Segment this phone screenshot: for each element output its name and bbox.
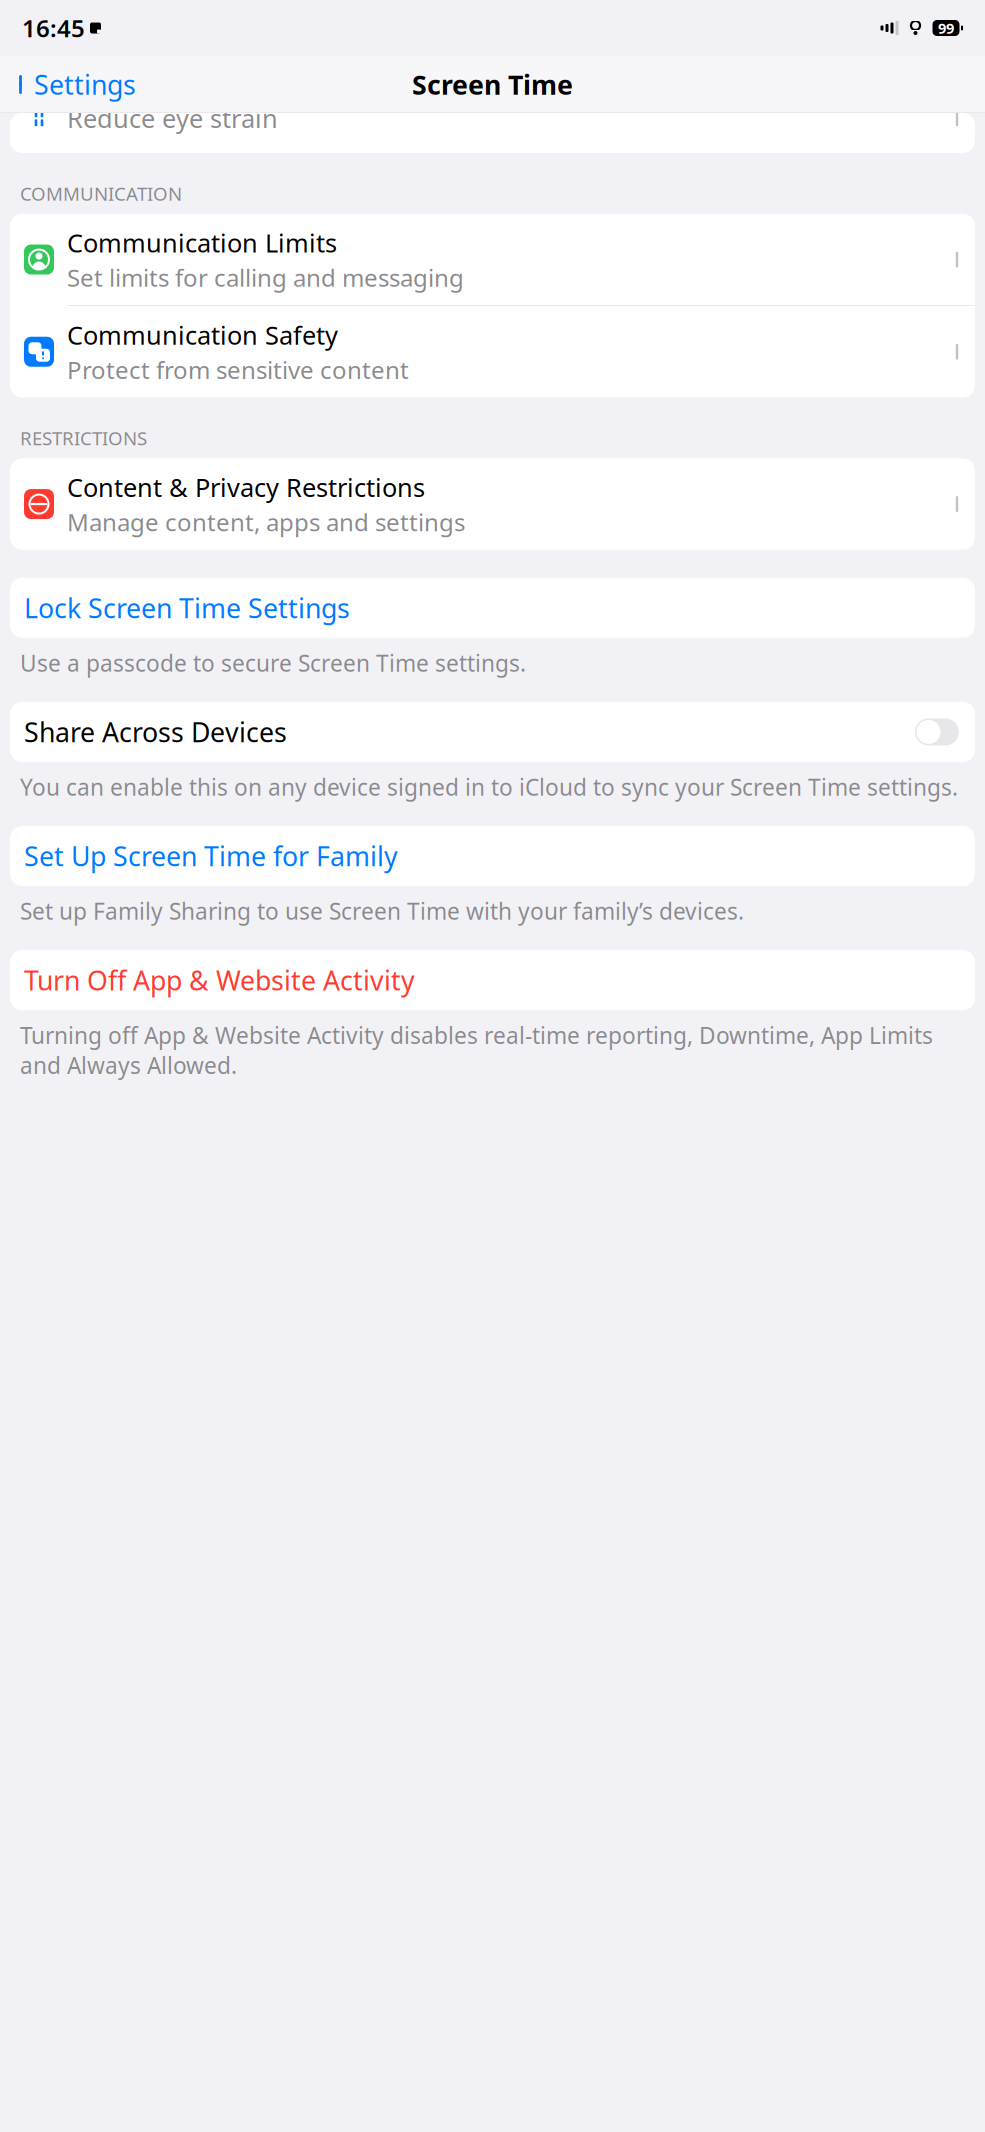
button[interactable]: Set Up Screen Time for Family bbox=[10, 826, 975, 886]
staticText: Manage content, apps and settings bbox=[67, 506, 465, 538]
staticText: Communication Limits bbox=[67, 226, 337, 259]
staticText: Communication Safety bbox=[67, 318, 338, 352]
button[interactable]: Communication Limits bbox=[10, 214, 975, 305]
staticText: Set up Family Sharing to use Screen Time… bbox=[20, 896, 744, 926]
staticText: Set limits for calling and messaging bbox=[67, 261, 464, 293]
button[interactable]: Content & Privacy Restrictions bbox=[10, 458, 975, 550]
staticText: Share Across Devices bbox=[24, 714, 287, 750]
staticText: Lock Screen Time Settings bbox=[24, 590, 350, 625]
staticText: Screen Time bbox=[412, 67, 573, 102]
staticText: Turn Off App & Website Activity bbox=[24, 962, 415, 998]
staticText: Content & Privacy Restrictions bbox=[67, 470, 425, 504]
button[interactable]: Communication Safety bbox=[10, 306, 975, 397]
staticText: Reduce eye strain bbox=[67, 101, 278, 135]
staticText: 99 bbox=[938, 18, 954, 38]
staticText: RESTRICTIONS bbox=[20, 425, 147, 450]
button[interactable]: Settings bbox=[0, 57, 152, 112]
staticText: COMMUNICATION bbox=[20, 181, 182, 206]
button[interactable]: Share Across Devices bbox=[913, 716, 961, 748]
staticText: 16:45 bbox=[22, 12, 85, 44]
staticText: Set Up Screen Time for Family bbox=[24, 838, 398, 874]
staticText: Settings bbox=[34, 67, 136, 102]
button[interactable]: Reduce eye strain bbox=[10, 113, 975, 153]
staticText: Use a passcode to secure Screen Time set… bbox=[20, 648, 526, 678]
button[interactable]: Turn Off App & Website Activity bbox=[10, 950, 975, 1010]
staticText: You can enable this on any device signed… bbox=[20, 772, 958, 802]
button[interactable]: Lock Screen Time Settings bbox=[10, 578, 975, 638]
staticText: Protect from sensitive content bbox=[67, 354, 409, 385]
staticText: Turning off App & Website Activity disab… bbox=[20, 1020, 933, 1080]
